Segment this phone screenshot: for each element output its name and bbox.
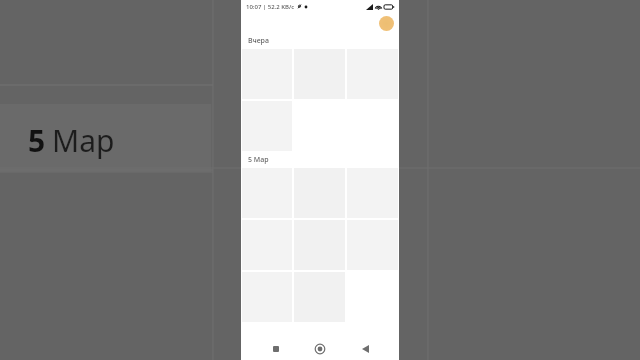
staticText: 5 (28, 120, 46, 161)
staticText: 10:07 | 52.2 KB/c (246, 3, 295, 11)
button[interactable]: Create (379, 16, 394, 31)
staticText: Map (52, 120, 115, 161)
button[interactable]: Back (355, 339, 375, 359)
staticText: Вчера (248, 36, 269, 46)
button[interactable]: Home (310, 339, 330, 359)
staticText: 5 Map (248, 155, 269, 165)
button[interactable]: Recent apps (266, 339, 286, 359)
